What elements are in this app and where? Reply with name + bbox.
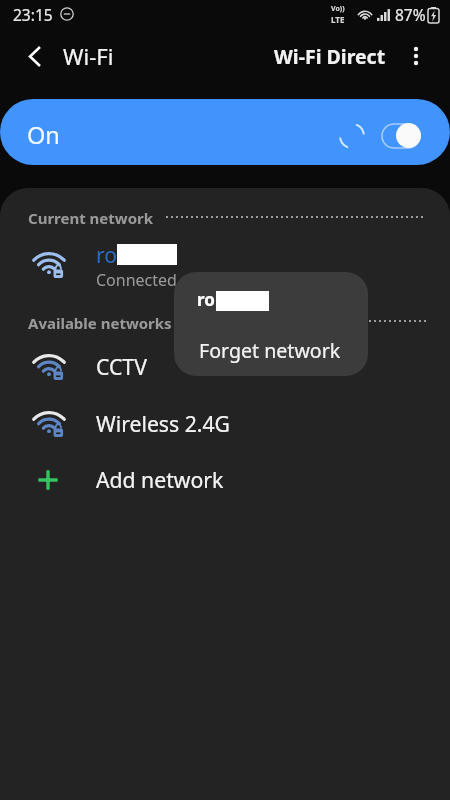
button[interactable]: Wireless 2.4G [0, 400, 450, 450]
staticText: ro [96, 241, 117, 270]
staticText: CCTV [96, 352, 147, 381]
staticText: Current network [28, 208, 154, 228]
staticText: Forget network [199, 337, 341, 364]
button[interactable]: Wi-Fi Direct [268, 36, 392, 77]
button[interactable]: Add network [0, 456, 450, 506]
staticText: 23:15 [13, 4, 53, 25]
staticText: Wireless 2.4G [96, 409, 231, 438]
staticText: On [27, 119, 60, 151]
staticText: Wi-Fi Direct [274, 43, 386, 70]
staticText: Wi-Fi [63, 41, 114, 71]
staticText: ro [197, 288, 215, 311]
button[interactable]: Forget network [174, 328, 368, 370]
staticText: LTE [331, 14, 345, 25]
button[interactable]: CCTV [0, 343, 450, 393]
button[interactable]: On [0, 99, 450, 165]
button[interactable]: Back [13, 36, 53, 76]
staticText: Available networks [28, 313, 172, 333]
staticText: Connected [96, 269, 177, 291]
button[interactable]: ro [0, 238, 450, 294]
button[interactable]: More options [399, 39, 433, 73]
staticText: Vo)) [331, 4, 345, 14]
button[interactable]: Wi-Fi toggle [382, 124, 420, 148]
staticText: Add network [96, 465, 224, 494]
staticText: 87% [395, 4, 426, 25]
